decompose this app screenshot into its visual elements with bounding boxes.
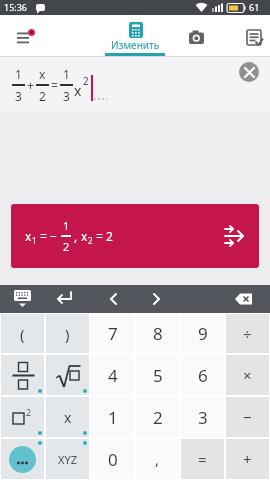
staticText: 3 [15,88,22,104]
staticText: − [243,407,252,427]
button[interactable] [216,285,270,313]
staticText: 5 [153,364,163,387]
button[interactable] [239,62,259,82]
button[interactable]: 4 [91,355,134,395]
button[interactable] [46,355,89,395]
button[interactable] [242,26,266,50]
staticText: 2 [63,239,70,254]
button[interactable] [0,285,54,313]
button[interactable]: XYZ [46,439,89,479]
staticText: 4 [108,364,118,387]
staticText: 2 [26,406,32,418]
staticText: = [198,449,207,469]
button[interactable]: 7 [91,314,134,353]
staticText: + [243,449,252,469]
staticText: 3 [198,406,208,429]
button[interactable]: 9 [181,314,224,353]
staticText: + [27,77,34,93]
staticText: , [71,228,81,244]
staticText: 0 [108,448,118,471]
staticText: 1 [32,235,37,246]
staticText: x [74,81,82,100]
staticText: 1 [108,406,118,429]
staticText: 8 [153,322,163,345]
staticText: 1 [63,218,70,233]
staticText: x [25,228,32,244]
button[interactable]: x [11,204,259,268]
button[interactable] [1,355,44,395]
button[interactable]: 3 [181,397,224,437]
staticText: = 2 [93,228,113,244]
button[interactable]: 2 [136,397,179,437]
staticText: 2 [153,406,163,429]
staticText: x [64,408,72,427]
button[interactable] [108,285,162,313]
staticText: ( [20,324,25,344]
staticText: 15:36 [4,1,28,13]
button[interactable]: ÷ [226,314,269,353]
staticText: 3 [63,88,70,104]
button[interactable]: x [46,397,89,437]
button[interactable]: 2 [1,397,44,437]
staticText: 2 [83,74,89,88]
staticText: ) [65,324,70,344]
staticText: x [81,228,88,244]
button[interactable] [1,439,44,479]
button[interactable] [186,27,208,49]
button[interactable]: × [226,355,269,395]
button[interactable]: 5 [136,355,179,395]
staticText: 2 [88,235,93,246]
button[interactable]: 1 [91,397,134,437]
staticText: 7 [108,322,118,345]
staticText: ÷ [243,324,252,344]
button[interactable]: ( [1,314,44,353]
button[interactable] [8,23,36,51]
staticText: 1 [15,66,22,82]
button[interactable]: Изменить [111,15,160,52]
staticText: 1 [63,66,70,82]
staticText: 9 [198,322,208,345]
button[interactable]: , [136,439,179,479]
staticText: Изменить [111,38,160,52]
staticText: = [51,77,58,93]
staticText: 61 [249,1,260,13]
button[interactable]: 8 [136,314,179,353]
staticText: , [155,449,160,469]
button[interactable]: − [226,397,269,437]
staticText: = − [37,228,61,244]
button[interactable] [54,285,108,313]
staticText: x [39,66,46,82]
staticText: XYZ [58,452,77,467]
staticText: × [243,365,252,385]
staticText: 6 [198,364,208,387]
button[interactable]: ) [46,314,89,353]
button[interactable]: 0 [91,439,134,479]
staticText: 2 [39,88,46,104]
button[interactable]: 6 [181,355,224,395]
button[interactable]: + [226,439,269,479]
button[interactable]: = [181,439,224,479]
